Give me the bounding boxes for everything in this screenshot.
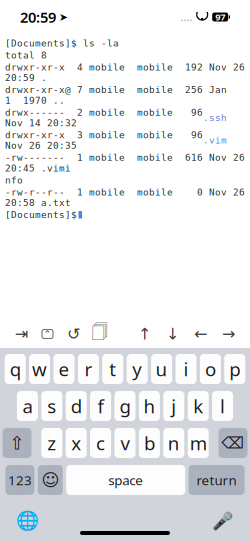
button[interactable]: Paste [92,324,107,344]
staticText: z [47,431,56,455]
button[interactable]: l [212,391,233,421]
staticText: i [183,357,188,381]
staticText: n [168,431,180,455]
button[interactable]: q [5,354,26,384]
button[interactable]: v [114,428,135,458]
button[interactable]: d [66,391,87,421]
staticText: r [84,357,92,381]
button[interactable]: z [41,428,62,458]
staticText: k [193,394,203,418]
staticText: [Documents]$ ls -la [5,38,119,49]
staticText: y [132,357,142,381]
staticText: ↓ [166,325,179,343]
button[interactable]: m [188,428,209,458]
staticText: u [156,357,168,381]
button[interactable]: p [224,354,245,384]
staticText: w [32,357,47,381]
staticText: ← [194,325,207,343]
staticText: 123 [8,471,32,489]
button[interactable]: space [66,465,185,495]
button[interactable]: Tab [14,324,29,344]
button[interactable]: History [66,324,81,344]
button[interactable]: f [90,391,111,421]
staticText: space [108,471,143,489]
staticText: drwxr-xr-x 3 mobile mobile 96 Nov 26 20:… [5,130,203,151]
button[interactable]: b [139,428,160,458]
button[interactable]: Shift [2,428,31,458]
staticText: t [109,357,116,381]
staticText: 🌐 [15,510,38,532]
staticText: 20:59 [20,7,56,27]
staticText: → [222,325,235,343]
button[interactable]: e [53,354,74,384]
staticText: drwxr-xr-x@ 7 mobile mobile 256 Jan 1 19… [5,85,233,106]
staticText: ⇥ [15,325,28,343]
button[interactable]: Delete [218,428,247,458]
staticText: ⌃ [43,329,51,339]
staticText: b [144,431,155,455]
staticText: v [120,431,129,455]
button[interactable]: g [114,391,135,421]
staticText: f [98,394,104,418]
button[interactable]: u [151,354,172,384]
staticText: e [58,357,69,381]
staticText: ☺ [41,470,59,490]
staticText: ⇧ [9,432,25,454]
staticText: h [143,394,155,418]
staticText: -rw-r--r-- 1 mobile mobile 0 Nov 26 20:5… [5,187,245,208]
button[interactable]: h [139,391,160,421]
button[interactable]: Right [221,324,236,344]
staticText: nfo [5,175,23,185]
staticText: ⌫ [221,434,244,452]
staticText: 97 [215,11,225,23]
staticText: a [22,394,32,418]
staticText: total 8 [5,50,47,61]
staticText: ↺ [67,325,80,343]
button[interactable]: n [163,428,184,458]
staticText: drwx------ 2 mobile mobile 96 Nov 14 20:… [5,107,203,128]
button[interactable]: o [200,354,221,384]
staticText: .ssh [203,112,227,123]
staticText: o [205,357,216,381]
button[interactable]: Left [193,324,208,344]
button[interactable]: k [188,391,209,421]
staticText: [Documents]$ [5,209,77,220]
staticText: 🗍 [91,321,107,347]
button[interactable]: Control [40,324,55,344]
button[interactable]: r [78,354,99,384]
button[interactable]: y [127,354,148,384]
button[interactable]: c [90,428,111,458]
staticText: m [190,431,207,455]
button[interactable]: Emoji [38,465,63,495]
staticText: c [96,431,105,455]
staticText: -rw------- 1 mobile mobile 616 Nov 26 20… [5,152,245,173]
staticText: return [197,471,237,489]
staticText: p [229,357,240,381]
button[interactable]: 123 [5,465,34,495]
staticText: x [71,431,81,455]
button[interactable]: Switch keyboard [16,510,38,532]
staticText: 🎤 [212,511,234,531]
button[interactable]: return [189,465,245,495]
staticText: d [71,394,82,418]
staticText: j [171,394,176,418]
button[interactable]: s [41,391,62,421]
button[interactable]: Dictation [212,510,234,532]
button[interactable]: Down [165,324,180,344]
button[interactable]: t [102,354,123,384]
button[interactable]: x [66,428,87,458]
staticText: s [47,394,56,418]
staticText: g [119,394,130,418]
button[interactable]: w [29,354,50,384]
staticText: .... [180,10,192,24]
staticText: .vim [203,135,227,146]
button[interactable]: a [17,391,38,421]
staticText: q [10,357,21,381]
button[interactable]: Up [137,324,152,344]
staticText: ➤ [59,11,68,23]
button[interactable]: i [175,354,196,384]
staticText: ↑ [138,325,151,343]
button[interactable]: j [163,391,184,421]
staticText: drwxr-xr-x 4 mobile mobile 192 Nov 26 20… [5,62,245,83]
staticText: l [220,394,225,418]
